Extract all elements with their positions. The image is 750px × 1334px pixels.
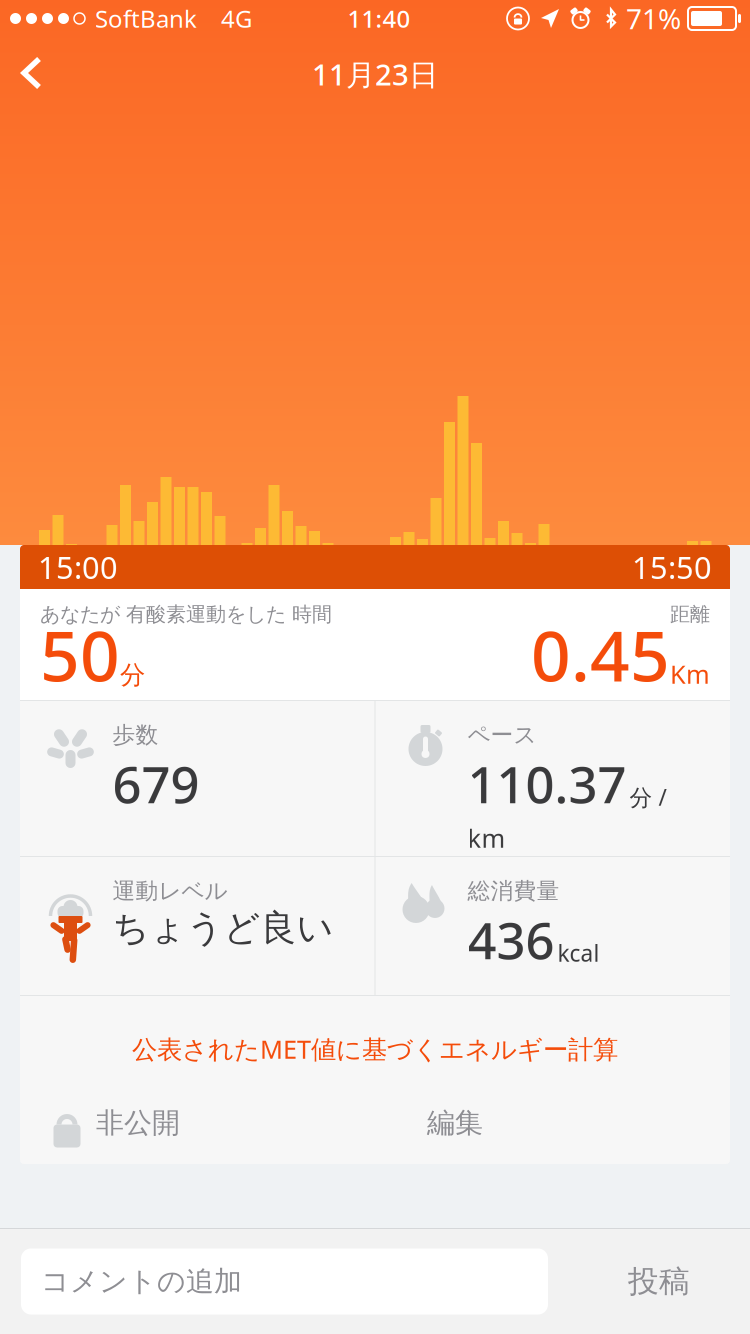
button[interactable]: 投稿 — [589, 1248, 729, 1314]
staticText: Km — [670, 657, 710, 691]
staticText: 11:40 — [347, 3, 410, 34]
staticText: 15:50 — [632, 547, 712, 587]
staticText: ペース — [467, 721, 536, 749]
staticText: 436 — [467, 906, 554, 973]
staticText: 公表されたMET値に基づくエネルギー計算 — [132, 1032, 618, 1066]
staticText: 0.45 — [531, 609, 670, 701]
staticText: 71% — [626, 0, 681, 37]
staticText: 50 — [40, 609, 120, 701]
staticText: 非公開 — [96, 1106, 180, 1140]
staticText: km — [467, 821, 505, 855]
staticText: 110.37 — [467, 750, 626, 817]
staticText: 15:00 — [38, 547, 118, 587]
staticText: kcal — [557, 938, 599, 968]
staticText: 編集 — [427, 1106, 483, 1140]
staticText: 距離 — [670, 602, 710, 627]
staticText: コメントの追加 — [41, 1264, 242, 1299]
staticText: 11月23日 — [312, 54, 438, 93]
staticText: 分 / — [629, 782, 666, 812]
staticText: 運動レベル — [112, 877, 227, 905]
staticText: 679 — [112, 750, 199, 817]
staticText: あなたが 有酸素運動をした 時間 — [40, 602, 332, 627]
staticText: 歩数 — [112, 721, 158, 749]
staticText: 分 — [120, 659, 145, 691]
staticText: 投稿 — [628, 1263, 690, 1300]
staticText: 4G — [221, 3, 252, 34]
button[interactable]: Back — [0, 41, 63, 105]
staticText: SoftBank — [95, 3, 197, 34]
staticText: ちょうど良い — [112, 906, 333, 950]
staticText: 総消費量 — [467, 877, 559, 905]
